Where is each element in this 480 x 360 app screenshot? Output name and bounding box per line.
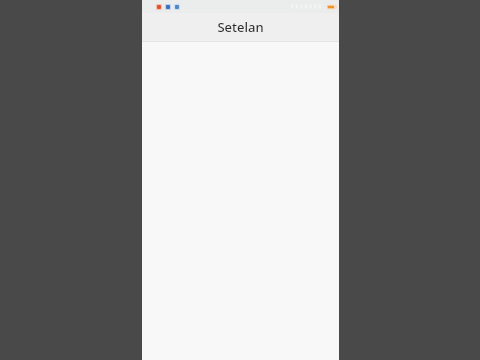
button[interactable]: Setelan [142,13,339,41]
staticText: Setelan [217,18,264,36]
